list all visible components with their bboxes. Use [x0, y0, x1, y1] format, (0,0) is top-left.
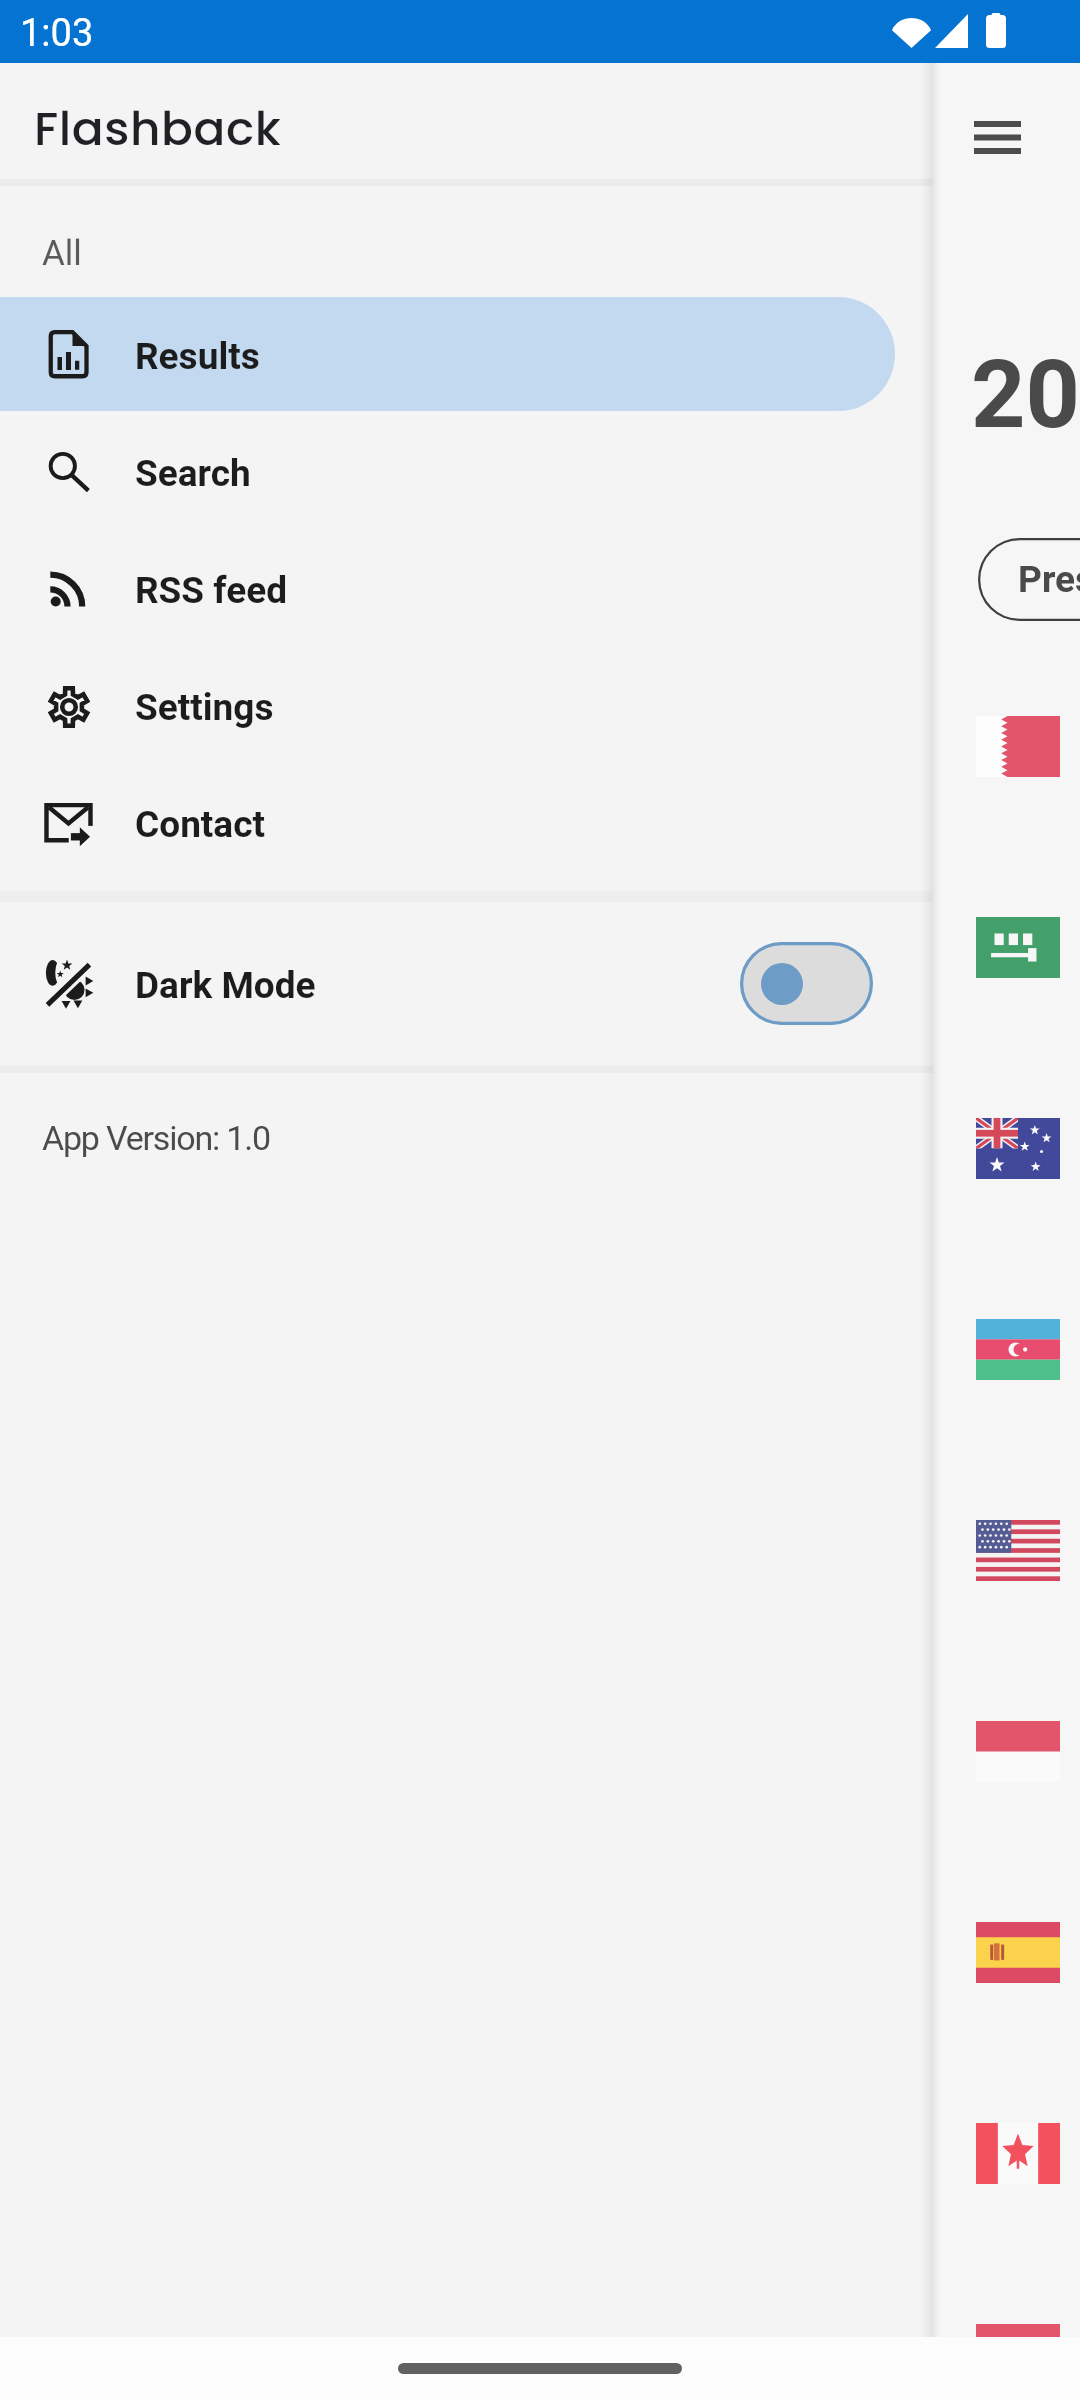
- button[interactable]: Country flag item: [976, 716, 1060, 777]
- staticText: All: [42, 233, 82, 274]
- button[interactable]: Country flag item: [976, 1520, 1060, 1581]
- staticText: App Version: 1.0: [42, 1118, 270, 1158]
- button[interactable]: Open navigation drawer: [953, 93, 1042, 182]
- button[interactable]: Country flag item: [976, 1118, 1060, 1179]
- staticText: Dark Mode: [135, 964, 316, 1007]
- button[interactable]: Results: [0, 297, 895, 411]
- button[interactable]: Country flag item: [976, 917, 1060, 978]
- staticText: Press: [1018, 558, 1080, 601]
- button[interactable]: Country flag item: [976, 1721, 1060, 1782]
- button[interactable]: Settings: [0, 648, 895, 762]
- staticText: 1:03: [20, 11, 94, 56]
- button[interactable]: Dark Mode: [0, 899, 933, 1071]
- button[interactable]: Country flag item: [976, 2324, 1060, 2385]
- button[interactable]: Country flag item: [976, 1319, 1060, 1380]
- button[interactable]: Contact: [0, 765, 895, 879]
- staticText: Flashback: [34, 96, 282, 162]
- button[interactable]: Toggle dark mode: [740, 942, 873, 1025]
- button[interactable]: Country flag item: [976, 1922, 1060, 1983]
- staticText: RSS feed: [135, 569, 288, 612]
- staticText: Results: [135, 335, 260, 378]
- button[interactable]: Press: [978, 538, 1080, 621]
- button[interactable]: Search: [0, 414, 895, 528]
- staticText: 2023: [971, 339, 1080, 450]
- button[interactable]: RSS feed: [0, 531, 895, 645]
- staticText: Contact: [135, 803, 266, 846]
- button[interactable]: Country flag item: [976, 2123, 1060, 2184]
- staticText: Search: [135, 452, 251, 495]
- staticText: Settings: [135, 686, 274, 729]
